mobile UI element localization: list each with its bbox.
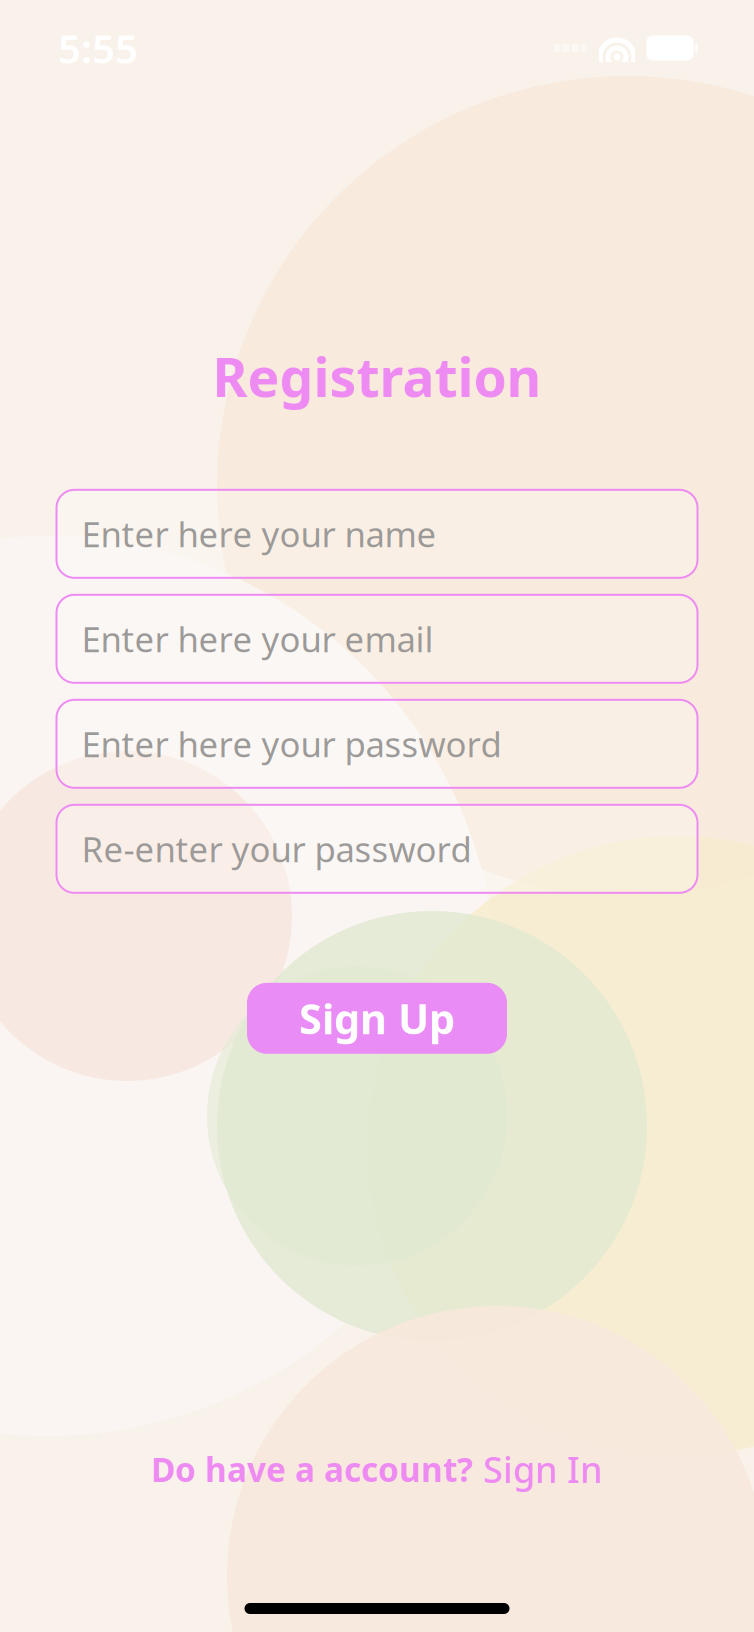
staticText: Sign In [483,1445,603,1493]
staticText: Enter here your password [81,721,501,767]
staticText: Do have a account? [151,1447,473,1491]
button[interactable]: Enter here your email [56,595,697,683]
staticText: 5:55 [58,21,138,74]
button[interactable]: Sign Up [247,983,507,1054]
staticText: Registration [212,341,541,412]
button[interactable]: Do have a account? [151,1445,603,1493]
staticText: Enter here your email [81,616,433,662]
staticText: Re-enter your password [81,826,471,872]
button[interactable]: Enter here your name [56,490,697,578]
staticText: Sign Up [299,991,455,1046]
button[interactable]: Re-enter your password [56,805,697,893]
button[interactable]: Enter here your password [56,700,697,788]
staticText: Enter here your name [81,511,436,557]
